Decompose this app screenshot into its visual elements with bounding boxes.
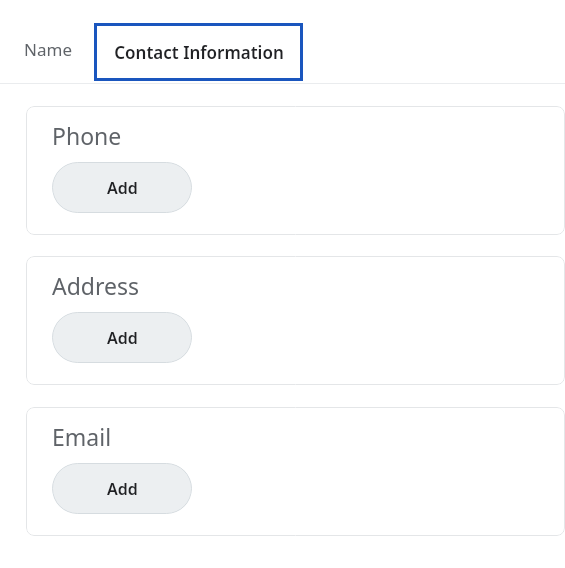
button[interactable]: Contact Information [94,23,303,81]
button[interactable]: Add [52,312,192,363]
staticText: Phone [52,120,122,151]
button[interactable]: Add [52,162,192,213]
staticText: Add [107,327,138,349]
staticText: Add [107,177,138,199]
staticText: Contact Information [114,41,284,64]
staticText: Name [24,38,72,61]
button[interactable]: Add [52,463,192,514]
button[interactable]: Name [14,14,82,80]
staticText: Add [107,478,138,500]
staticText: Address [52,270,140,301]
staticText: Email [52,421,112,452]
